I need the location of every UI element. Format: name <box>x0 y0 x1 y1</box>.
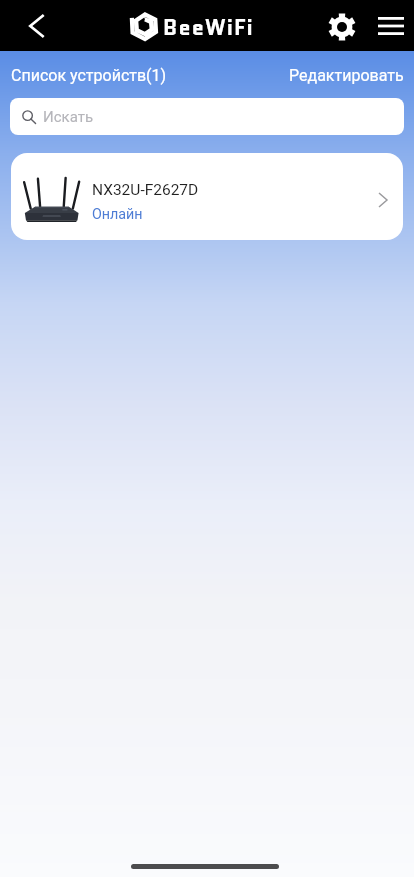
button[interactable]: Menu <box>372 9 410 43</box>
staticText: Онлайн <box>92 206 143 223</box>
button[interactable]: Back <box>22 11 52 41</box>
staticText: BeeWiFi <box>163 12 254 43</box>
button[interactable]: NX32U-F2627D <box>11 153 403 240</box>
button[interactable]: Редактировать <box>289 66 404 85</box>
button[interactable]: Список устройств(1) <box>11 66 167 85</box>
staticText: NX32U-F2627D <box>92 181 199 199</box>
button[interactable]: Искать <box>10 98 404 135</box>
staticText: Искать <box>43 108 94 126</box>
button[interactable]: Settings <box>325 10 359 44</box>
